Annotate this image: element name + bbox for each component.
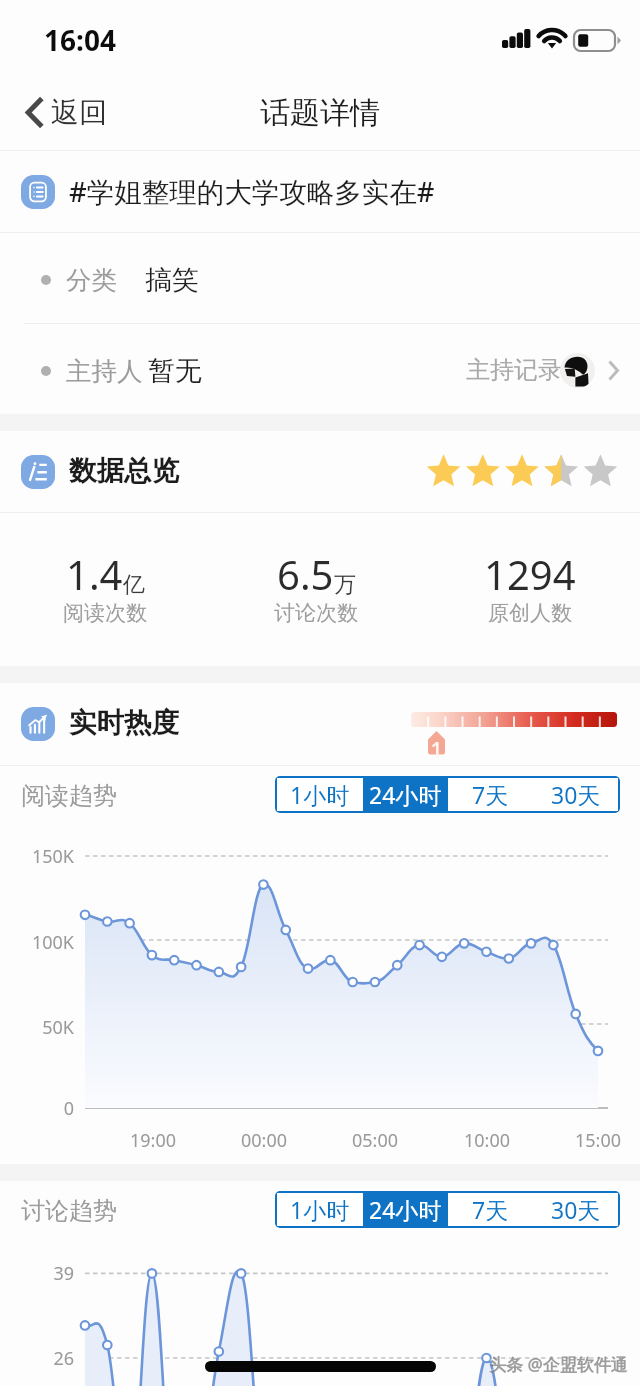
button[interactable]: 7天 — [448, 1193, 533, 1226]
staticText: 50K — [0, 1015, 74, 1040]
staticText: 26 — [0, 1346, 74, 1371]
staticText: 实时热度 — [69, 706, 179, 741]
staticText: 暂无 — [148, 354, 202, 388]
staticText: 分类 — [66, 264, 117, 296]
button[interactable]: 主持记录 — [456, 324, 640, 414]
staticText: 7天 — [472, 1194, 509, 1225]
staticText: 头条 @企盟软件通 — [489, 1353, 628, 1376]
button[interactable]: 24小时 — [363, 778, 448, 811]
staticText: 阅读趋势 — [21, 781, 117, 811]
staticText: 万 — [334, 571, 356, 599]
staticText: 阅读次数 — [63, 600, 147, 626]
button[interactable]: 1小时 — [277, 778, 363, 811]
staticText: 原创人数 — [488, 600, 572, 626]
staticText: 16:04 — [44, 21, 116, 59]
staticText: 1小时 — [290, 779, 350, 810]
staticText: 主持人 — [66, 355, 143, 387]
staticText: 24小时 — [369, 779, 442, 810]
button[interactable]: 分类 — [0, 233, 640, 323]
staticText: 05:00 — [330, 1128, 420, 1153]
staticText: 话题详情 — [260, 94, 380, 132]
button[interactable]: 返回 — [0, 85, 125, 140]
button[interactable]: 30天 — [533, 778, 618, 811]
staticText: 主持记录 — [466, 355, 562, 385]
button[interactable]: 主持人 — [0, 324, 640, 414]
staticText: 返回 — [51, 95, 107, 130]
staticText: 7天 — [472, 779, 509, 810]
staticText: 1294 — [484, 547, 576, 601]
staticText: 39 — [0, 1261, 74, 1286]
staticText: 0 — [0, 1096, 74, 1121]
staticText: 6.5 — [277, 547, 334, 601]
staticText: 1小时 — [290, 1194, 350, 1225]
staticText: 亿 — [123, 571, 145, 599]
staticText: 19:00 — [108, 1128, 198, 1153]
staticText: 100K — [0, 930, 74, 955]
staticText: 搞笑 — [145, 263, 199, 297]
staticText: 150K — [0, 844, 74, 869]
button[interactable]: #学姐整理的大学攻略多实在# — [0, 151, 640, 232]
staticText: 头条 @企盟软件通 — [488, 1352, 627, 1375]
staticText: 30天 — [551, 1194, 601, 1225]
staticText: 30天 — [551, 779, 601, 810]
button[interactable]: 24小时 — [363, 1193, 448, 1226]
staticText: 讨论趋势 — [21, 1196, 117, 1226]
button[interactable]: 1小时 — [277, 1193, 363, 1226]
button[interactable]: 7天 — [448, 778, 533, 811]
staticText: 15:00 — [553, 1128, 640, 1153]
staticText: 讨论次数 — [274, 600, 358, 626]
staticText: 1 — [428, 736, 445, 765]
staticText: 数据总览 — [69, 454, 179, 489]
staticText: 24小时 — [369, 1194, 442, 1225]
staticText: 00:00 — [219, 1128, 309, 1153]
staticText: #学姐整理的大学攻略多实在# — [69, 173, 435, 211]
staticText: 10:00 — [442, 1128, 532, 1153]
staticText: 1.4 — [66, 547, 123, 601]
button[interactable]: 30天 — [533, 1193, 618, 1226]
